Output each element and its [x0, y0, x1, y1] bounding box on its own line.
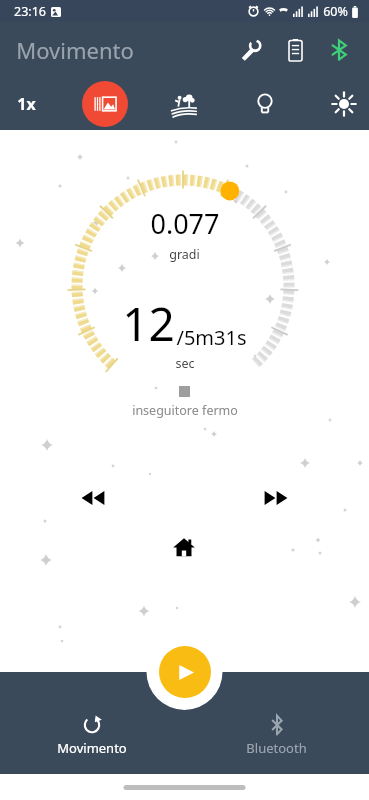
button[interactable]: Movimento — [0, 713, 184, 759]
button[interactable]: Landscape scene — [162, 82, 206, 126]
button[interactable]: Brightness — [322, 82, 366, 126]
button[interactable]: 1x — [4, 82, 48, 126]
button[interactable]: Battery — [273, 28, 317, 72]
button[interactable]: Bluetooth — [317, 28, 361, 72]
button[interactable]: Bluetooth — [184, 713, 369, 759]
button[interactable]: Lamp — [243, 82, 287, 126]
button[interactable]: Play — [159, 646, 211, 698]
staticText: Movimento — [16, 35, 134, 65]
staticText: /5m31s — [176, 324, 247, 351]
staticText: 23:16 — [14, 3, 46, 20]
staticText: 0.077 — [150, 205, 220, 242]
staticText: Bluetooth — [246, 739, 307, 757]
staticText: inseguitore fermo — [132, 402, 238, 419]
staticText: Movimento — [57, 739, 127, 757]
button[interactable]: Home — [162, 528, 206, 566]
staticText: 60% — [323, 3, 348, 20]
button[interactable]: Capture mode — [82, 81, 128, 127]
button[interactable]: Settings — [229, 28, 273, 72]
button[interactable]: Rewind — [69, 481, 117, 515]
staticText: 12 — [122, 292, 175, 355]
staticText: sec — [175, 355, 195, 372]
staticText: gradi — [169, 246, 200, 263]
button[interactable]: Fast forward — [252, 481, 300, 515]
staticText: 1x — [17, 93, 36, 115]
